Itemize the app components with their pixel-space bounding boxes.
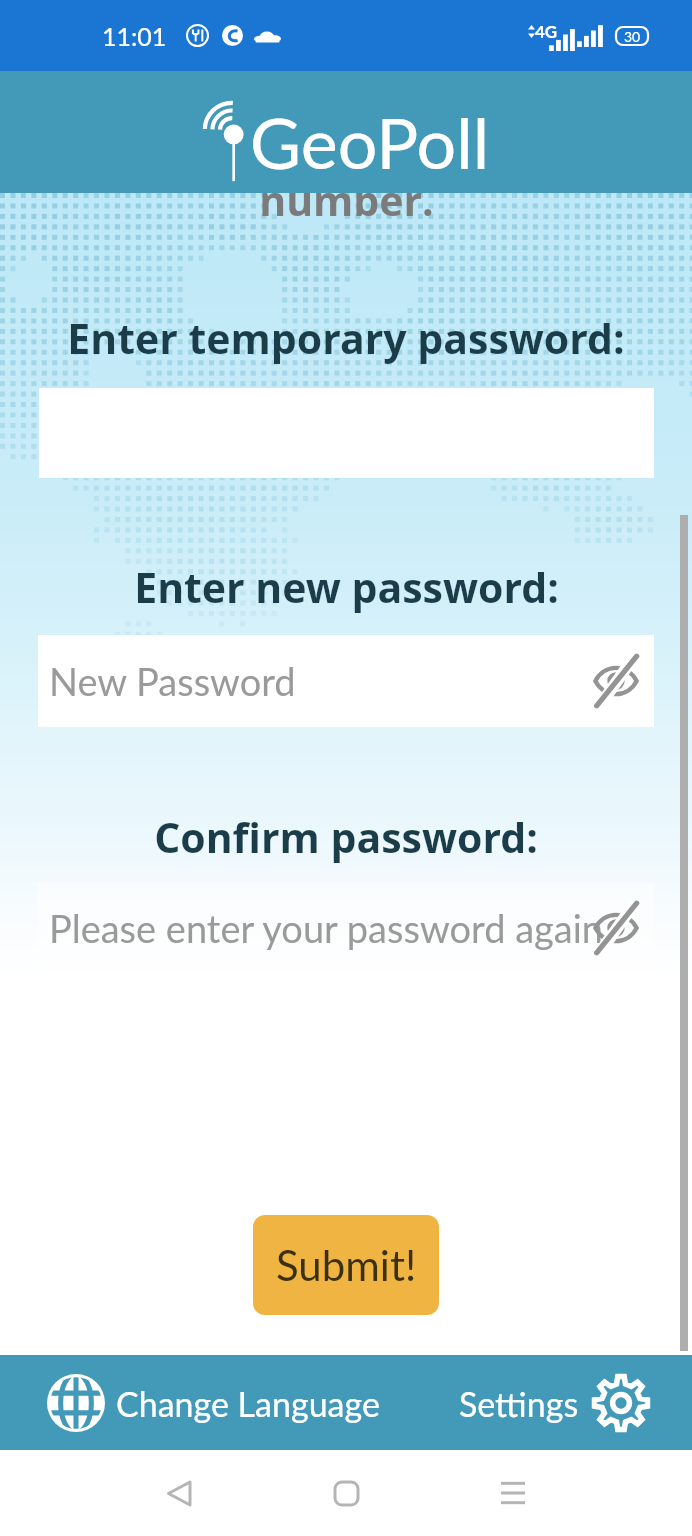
button[interactable]: Back — [143, 1457, 215, 1529]
staticText: 11:01 — [102, 21, 167, 51]
staticText: 30 — [624, 28, 641, 45]
button[interactable]: Submit! — [253, 1215, 439, 1315]
staticText: GeoPoll — [250, 100, 490, 184]
button[interactable]: Please enter your password again — [38, 882, 654, 974]
button[interactable]: Home — [310, 1457, 382, 1529]
staticText: number. — [259, 172, 434, 228]
staticText: Change Language — [116, 1383, 380, 1424]
staticText: Enter new password: — [134, 559, 559, 615]
button[interactable]: New Password — [38, 635, 654, 727]
staticText: Please enter your password again — [49, 905, 604, 951]
other: Toggle password visibility — [594, 908, 638, 948]
staticText: Submit! — [276, 1240, 417, 1290]
other: Toggle password visibility — [594, 661, 638, 701]
staticText: Settings — [459, 1383, 579, 1424]
staticText: Confirm password: — [154, 809, 538, 865]
staticText: Enter temporary password: — [67, 310, 625, 366]
staticText: New Password — [49, 658, 296, 704]
button[interactable]: Settings — [459, 1374, 650, 1432]
button[interactable]: Recent apps — [477, 1457, 549, 1529]
staticText: 4G — [535, 21, 558, 41]
button[interactable]: Change Language — [47, 1374, 380, 1432]
